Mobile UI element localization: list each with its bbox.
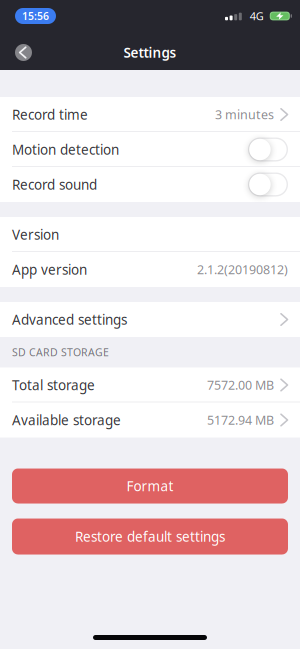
staticText: 4G xyxy=(250,8,264,23)
staticText: Available storage xyxy=(12,411,121,429)
button[interactable]: Format xyxy=(0,468,300,503)
button[interactable]: Record time xyxy=(0,97,300,132)
staticText: Record sound xyxy=(12,175,97,194)
staticText: Restore default settings xyxy=(75,527,225,546)
staticText: Version xyxy=(12,225,59,244)
button[interactable]: Record sound xyxy=(248,172,288,196)
staticText: Advanced settings xyxy=(12,310,127,329)
staticText: 2.1.2(20190812) xyxy=(197,261,288,278)
staticText: 5172.94 MB xyxy=(207,411,274,428)
staticText: App version xyxy=(12,260,87,279)
button[interactable]: Back xyxy=(15,44,32,61)
staticText: Total storage xyxy=(12,376,95,394)
staticText: 15:56 xyxy=(22,9,49,23)
staticText: Format xyxy=(126,477,173,495)
staticText: 7572.00 MB xyxy=(207,376,274,393)
button[interactable]: Total storage xyxy=(0,367,300,402)
button[interactable]: Motion detection xyxy=(248,137,288,161)
staticText: SD CARD STORAGE xyxy=(12,345,109,359)
button[interactable]: Restore default settings xyxy=(0,518,300,554)
button[interactable]: Advanced settings xyxy=(0,302,300,337)
button[interactable]: Available storage xyxy=(0,402,300,437)
staticText: Settings xyxy=(123,43,176,62)
staticText: 3 minutes xyxy=(215,106,274,123)
staticText: Record time xyxy=(12,105,88,124)
staticText: Motion detection xyxy=(12,140,119,159)
